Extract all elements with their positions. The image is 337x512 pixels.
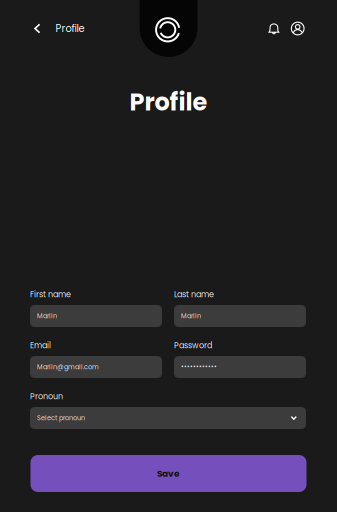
- button[interactable]: Profile: [0, 12, 95, 44]
- button[interactable]: ••••••••••••: [174, 356, 306, 378]
- staticText: Marlin: [181, 311, 201, 320]
- staticText: Save: [157, 467, 180, 480]
- staticText: Profile: [56, 22, 85, 35]
- staticText: Marlin: [37, 311, 57, 320]
- staticText: First name: [30, 289, 71, 300]
- button[interactable]: Account: [285, 15, 311, 41]
- button[interactable]: Select pronoun: [30, 407, 306, 429]
- button[interactable]: Notifications: [260, 15, 285, 41]
- staticText: Profile: [129, 85, 207, 119]
- staticText: Marlin@gmail.com: [37, 362, 99, 371]
- staticText: Password: [174, 340, 212, 351]
- button[interactable]: Marlin: [30, 305, 162, 327]
- staticText: Select pronoun: [37, 413, 85, 422]
- staticText: Email: [30, 340, 51, 351]
- button[interactable]: Marlin: [174, 305, 306, 327]
- button[interactable]: Marlin@gmail.com: [30, 356, 162, 378]
- staticText: Last name: [174, 289, 214, 300]
- button[interactable]: Save: [30, 455, 306, 492]
- staticText: ••••••••••••: [181, 362, 217, 371]
- staticText: Pronoun: [30, 391, 63, 402]
